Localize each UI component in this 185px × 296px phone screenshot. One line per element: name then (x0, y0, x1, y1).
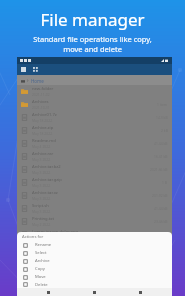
button[interactable]: Archive (17, 257, 172, 265)
staticText: Archive.rar (32, 151, 54, 157)
staticText: Archive.tar.gzip (32, 177, 62, 183)
staticText: Select (35, 250, 47, 256)
button[interactable]: Copy (17, 265, 172, 273)
staticText: new-folder (32, 86, 54, 92)
button[interactable]: Delete (17, 281, 172, 288)
staticText: Copy (35, 266, 45, 272)
staticText: Move (35, 274, 46, 280)
staticText: Rename (35, 242, 52, 248)
staticText: Standard file operations like copy, move… (33, 34, 152, 54)
staticText: Actions for (22, 234, 44, 240)
staticText: File manager (40, 8, 145, 31)
staticText: Archive.zip (32, 125, 54, 131)
button[interactable]: Rename (17, 241, 172, 249)
staticText: Apr 29 2022 (32, 235, 52, 240)
staticText: › (27, 77, 29, 84)
staticText: Home (31, 78, 44, 84)
staticText: Archive01.7z (32, 112, 57, 118)
button[interactable]: Lorem-ipsum-dolor.png (17, 228, 172, 241)
staticText: Archives (32, 99, 49, 105)
staticText: Printing.txt (32, 216, 55, 222)
button[interactable]: new-folder (17, 85, 172, 98)
button[interactable]: Move (17, 273, 172, 281)
staticText: Archive.tar.bz2 (32, 164, 61, 170)
staticText: Archive.tar.xz (32, 190, 58, 196)
staticText: Lorem-ipsum-dolor.png (32, 229, 79, 235)
button[interactable]: Archives (17, 98, 172, 111)
staticText: Script.sh (32, 203, 49, 209)
button[interactable]: Select (17, 249, 172, 257)
staticText: Archive (35, 258, 50, 264)
button[interactable]: Grid view (33, 67, 38, 72)
staticText: Readme.md (32, 138, 56, 144)
staticText: Delete (35, 282, 48, 288)
